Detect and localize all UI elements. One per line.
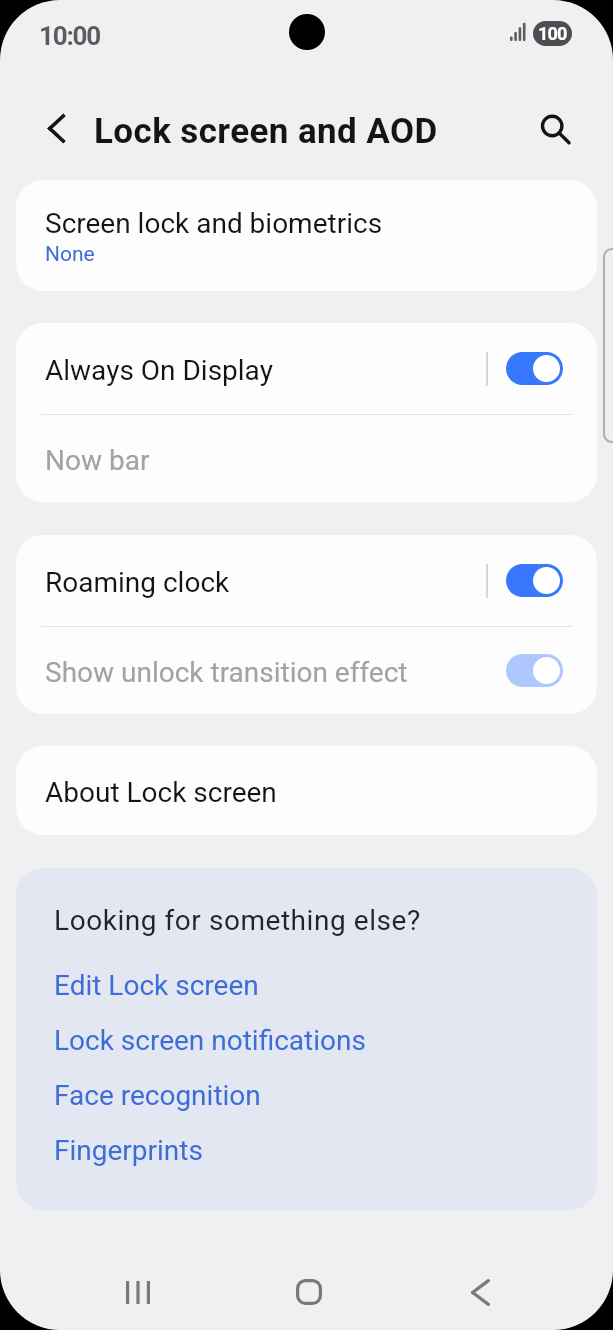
staticText: Lock screen notifications xyxy=(54,1024,366,1057)
button[interactable]: Search xyxy=(527,101,577,151)
button[interactable]: Edit Lock screen xyxy=(54,958,597,1013)
staticText: 10:00 xyxy=(39,21,100,52)
button[interactable]: Lock screen notifications xyxy=(54,1013,597,1068)
button[interactable]: Roaming clock xyxy=(16,535,597,626)
staticText: Fingerprints xyxy=(54,1134,203,1167)
staticText: 100 xyxy=(538,23,567,44)
staticText: Show unlock transition effect xyxy=(45,656,486,689)
button[interactable]: Always On Display xyxy=(506,352,563,385)
staticText: About Lock screen xyxy=(45,776,277,809)
button[interactable]: Back xyxy=(435,1254,525,1330)
staticText: Looking for something else? xyxy=(54,904,421,937)
staticText: None xyxy=(45,241,95,266)
staticText: Edit Lock screen xyxy=(54,969,259,1002)
staticText: Roaming clock xyxy=(45,566,486,599)
button[interactable]: Screen lock and biometrics xyxy=(16,180,597,291)
button[interactable]: Recent apps xyxy=(93,1254,183,1330)
staticText: Now bar xyxy=(45,444,150,477)
button[interactable]: Always On Display xyxy=(16,323,597,414)
button[interactable]: Show unlock transition effect xyxy=(16,627,597,714)
button[interactable]: Face recognition xyxy=(54,1068,597,1123)
button[interactable]: Home xyxy=(264,1254,354,1330)
button[interactable]: Fingerprints xyxy=(54,1123,597,1178)
staticText: Lock screen and AOD xyxy=(94,110,438,151)
staticText: Face recognition xyxy=(54,1079,261,1112)
button[interactable]: Now bar xyxy=(16,415,597,502)
staticText: Screen lock and biometrics xyxy=(45,207,383,240)
staticText: Always On Display xyxy=(45,354,486,387)
button[interactable]: Show unlock transition effect xyxy=(506,654,563,687)
button[interactable]: Navigate up xyxy=(32,104,80,152)
button[interactable]: Roaming clock xyxy=(506,564,563,597)
button[interactable]: About Lock screen xyxy=(16,746,597,835)
